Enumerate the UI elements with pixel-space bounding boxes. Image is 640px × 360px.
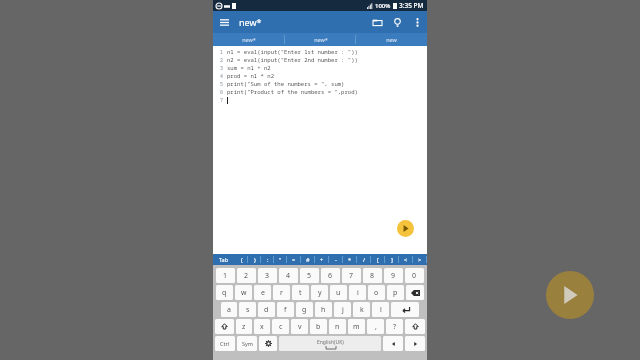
button[interactable]: n <box>329 319 346 334</box>
button[interactable]: v <box>291 319 308 334</box>
button[interactable]: ] <box>385 254 399 265</box>
staticText: 3 <box>220 65 224 72</box>
button[interactable]: * <box>343 254 357 265</box>
button[interactable]: q <box>216 285 233 300</box>
button[interactable]: new* <box>213 33 285 46</box>
button[interactable]: s <box>239 302 256 317</box>
staticText: 1 <box>223 271 228 281</box>
button[interactable]: m <box>348 319 365 334</box>
staticText: n1 = eval(input("Enter 1st number : ")) <box>227 48 358 56</box>
button[interactable]: z <box>236 319 252 334</box>
staticText: b <box>316 322 321 332</box>
button[interactable]: a <box>221 302 237 317</box>
button[interactable]: j <box>334 302 351 317</box>
staticText: / <box>363 256 366 263</box>
button[interactable]: Ctrl <box>215 336 235 351</box>
staticText: p <box>393 288 398 298</box>
button[interactable]: Run <box>397 220 414 237</box>
button[interactable]: i <box>349 285 366 300</box>
button[interactable]: 0 <box>405 268 424 283</box>
button[interactable]: Sym <box>237 336 257 351</box>
button[interactable]: More options <box>407 12 427 32</box>
button[interactable]: new* <box>285 33 356 46</box>
button[interactable]: Open folder <box>367 12 387 32</box>
staticText: Ctrl <box>220 340 230 347</box>
button[interactable]: Cursor right <box>405 336 425 351</box>
button[interactable]: : <box>261 254 274 265</box>
staticText: d <box>264 305 269 315</box>
staticText: ) <box>254 256 256 263</box>
button[interactable]: b <box>310 319 327 334</box>
button[interactable]: / <box>357 254 371 265</box>
staticText: 1 <box>220 49 224 56</box>
button[interactable]: ? <box>386 319 403 334</box>
staticText: z <box>242 322 246 332</box>
button[interactable]: < <box>399 254 413 265</box>
button[interactable]: " <box>274 254 287 265</box>
staticText: c <box>279 322 283 332</box>
staticText: 8 <box>370 271 375 281</box>
staticText: a <box>227 305 231 315</box>
button[interactable]: English(UK) <box>279 336 381 351</box>
button[interactable]: k <box>353 302 370 317</box>
button[interactable]: c <box>272 319 289 334</box>
button[interactable]: ( <box>235 254 248 265</box>
button[interactable]: g <box>296 302 313 317</box>
staticText: 3:35 PM <box>399 1 424 10</box>
staticText: [ <box>377 256 379 263</box>
button[interactable]: u <box>330 285 347 300</box>
button[interactable]: [ <box>371 254 385 265</box>
button[interactable]: 2 <box>237 268 256 283</box>
button[interactable]: Hints <box>387 12 407 32</box>
staticText: 0 <box>412 271 417 281</box>
button[interactable]: 7 <box>342 268 361 283</box>
button[interactable]: 1 <box>216 268 235 283</box>
button[interactable]: Play <box>546 271 594 319</box>
button[interactable]: 4 <box>279 268 298 283</box>
button[interactable]: ) <box>248 254 261 265</box>
button[interactable]: f <box>277 302 294 317</box>
button[interactable]: new <box>356 33 427 46</box>
button[interactable]: p <box>387 285 404 300</box>
button[interactable]: , <box>367 319 384 334</box>
button[interactable]: l <box>372 302 389 317</box>
staticText: 100% <box>375 2 391 10</box>
button[interactable]: x <box>254 319 270 334</box>
button[interactable]: 3 <box>258 268 277 283</box>
staticText: new* <box>314 36 328 43</box>
button[interactable]: 8 <box>363 268 382 283</box>
staticText: 2 <box>220 57 224 64</box>
staticText: k <box>360 305 364 315</box>
button[interactable]: o <box>368 285 385 300</box>
button[interactable]: 5 <box>300 268 319 283</box>
button[interactable]: # <box>301 254 315 265</box>
staticText: ? <box>393 322 397 332</box>
button[interactable]: h <box>315 302 332 317</box>
button[interactable]: + <box>315 254 329 265</box>
button[interactable]: e <box>254 285 271 300</box>
staticText: new* <box>239 16 262 28</box>
button[interactable]: y <box>311 285 328 300</box>
button[interactable]: d <box>258 302 275 317</box>
button[interactable]: Menu <box>213 11 235 33</box>
button[interactable]: Shift <box>215 319 234 334</box>
staticText: - <box>335 256 337 263</box>
button[interactable]: t <box>292 285 309 300</box>
staticText: q <box>222 288 227 298</box>
staticText: 6 <box>328 271 333 281</box>
button[interactable]: Settings <box>259 336 277 351</box>
button[interactable]: w <box>235 285 252 300</box>
button[interactable]: 6 <box>321 268 340 283</box>
staticText: r <box>280 288 283 298</box>
button[interactable]: = <box>287 254 301 265</box>
button[interactable]: Shift <box>405 319 425 334</box>
button[interactable]: Backspace <box>406 285 424 300</box>
button[interactable]: r <box>273 285 290 300</box>
staticText: 4 <box>286 271 291 281</box>
button[interactable]: - <box>329 254 343 265</box>
button[interactable]: Cursor left <box>383 336 403 351</box>
button[interactable]: Enter <box>391 302 419 317</box>
button[interactable]: > <box>413 254 427 265</box>
button[interactable]: 9 <box>384 268 403 283</box>
button[interactable]: Tab <box>213 254 235 265</box>
